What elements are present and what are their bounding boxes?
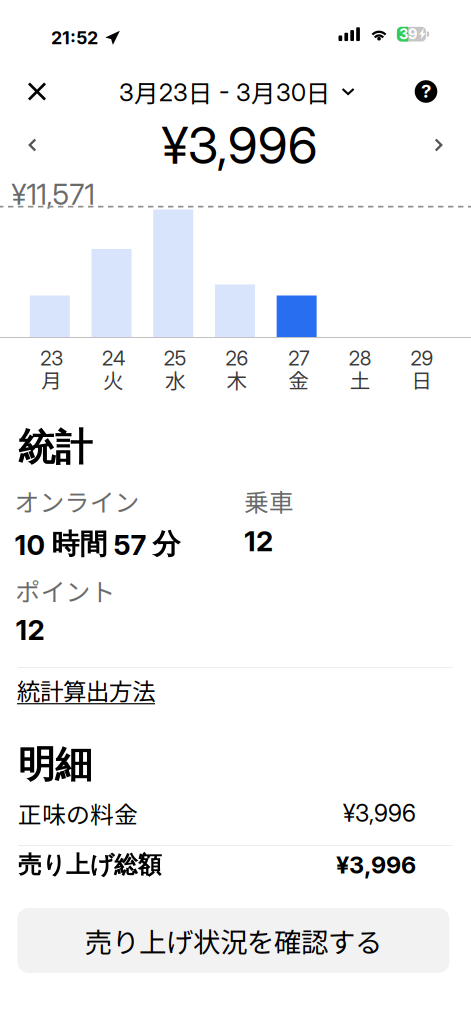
staticText: 売り上げ総額 bbox=[18, 850, 162, 880]
button[interactable]: 3月23日 - 3月30日 bbox=[111, 68, 363, 114]
staticText: 火 bbox=[103, 365, 124, 394]
staticText: 統計 bbox=[18, 424, 92, 471]
staticText: 明細 bbox=[18, 741, 92, 788]
staticText: オンライン bbox=[14, 483, 139, 519]
staticText: 月 bbox=[41, 365, 62, 394]
staticText: ¥3,996 bbox=[336, 851, 416, 879]
staticText: 正味の料金 bbox=[18, 796, 138, 830]
staticText: ? bbox=[421, 80, 431, 102]
staticText: ¥3,996 bbox=[162, 114, 318, 176]
staticText: 3月23日 - 3月30日 bbox=[119, 74, 331, 109]
staticText: 水 bbox=[165, 365, 186, 394]
staticText: 金 bbox=[288, 365, 309, 394]
staticText: 日 bbox=[412, 365, 433, 394]
button[interactable]: 売り上げ状況を確認する bbox=[17, 908, 449, 973]
staticText: 乗車 bbox=[244, 483, 294, 519]
staticText: 27 bbox=[288, 346, 309, 370]
staticText: 21:52 bbox=[51, 27, 98, 49]
staticText: 26 bbox=[225, 346, 248, 370]
staticText: ポイント bbox=[15, 572, 115, 608]
button[interactable]: 統計算出方法 bbox=[15, 663, 157, 717]
button[interactable]: ヘルプ bbox=[403, 68, 449, 114]
staticText: 売り上げ状況を確認する bbox=[85, 921, 382, 960]
staticText: 25 bbox=[164, 346, 187, 370]
staticText: 土 bbox=[350, 365, 371, 394]
staticText: 39 bbox=[399, 25, 418, 43]
staticText: ¥3,996 bbox=[343, 799, 416, 827]
staticText: 統計算出方法 bbox=[17, 673, 155, 707]
staticText: 10 時間 57 分 bbox=[14, 527, 180, 562]
button[interactable]: 次の週 bbox=[416, 123, 460, 167]
staticText: 木 bbox=[226, 365, 247, 394]
staticText: 29 bbox=[411, 346, 434, 370]
staticText: 28 bbox=[349, 346, 372, 370]
staticText: 12 bbox=[244, 524, 273, 558]
staticText: 23 bbox=[40, 346, 63, 370]
staticText: ¥11,571 bbox=[11, 177, 94, 212]
button[interactable]: 閉じる bbox=[14, 68, 60, 114]
staticText: 24 bbox=[102, 346, 125, 370]
button[interactable]: 前の週 bbox=[10, 123, 54, 167]
staticText: 12 bbox=[15, 613, 44, 647]
